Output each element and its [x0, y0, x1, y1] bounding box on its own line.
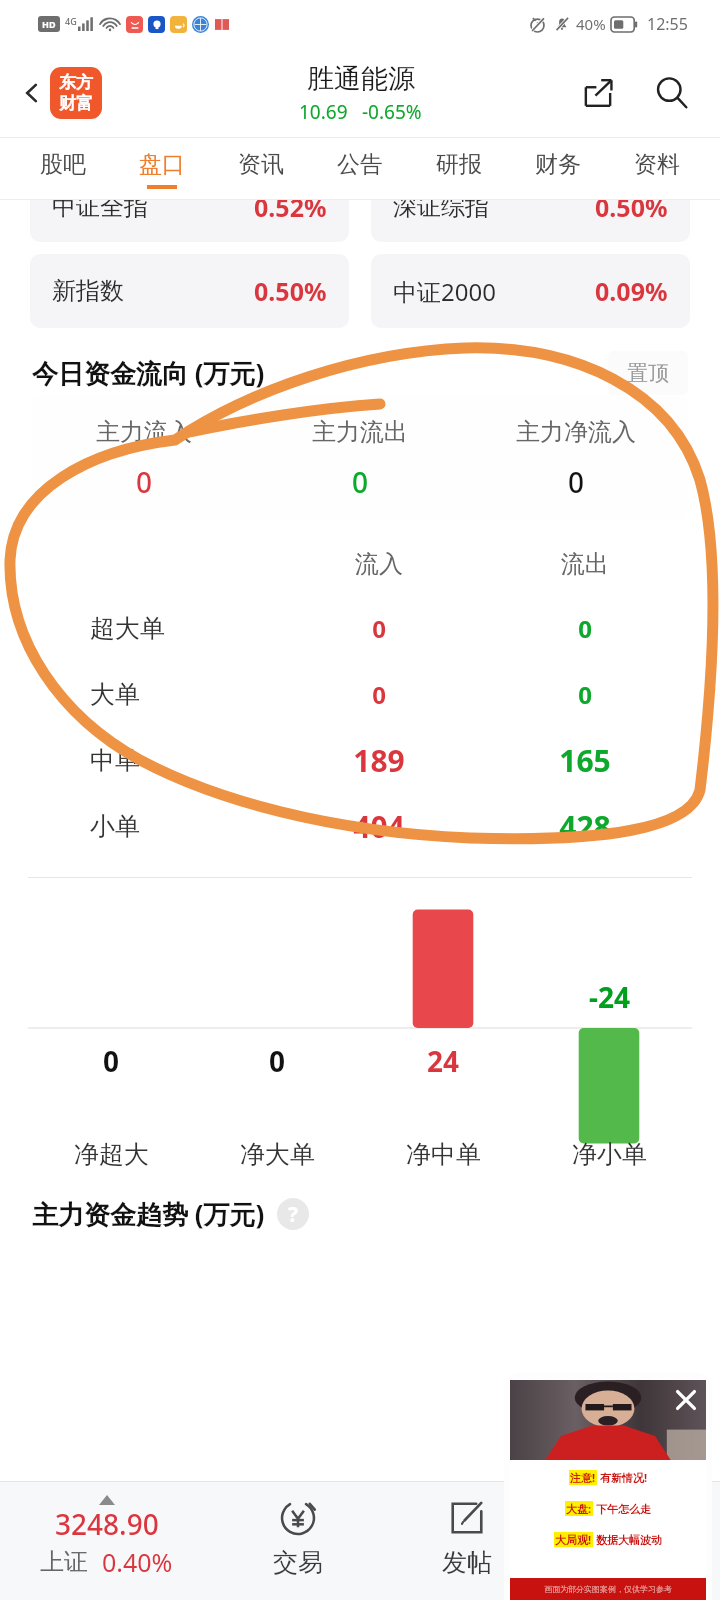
staticText: 数据大幅波动 — [596, 1533, 662, 1547]
button[interactable]: 交易 — [213, 1482, 382, 1600]
staticText: 东方 — [59, 72, 93, 93]
staticText: 股吧 — [40, 150, 86, 179]
staticText: 0.40% — [102, 1545, 173, 1579]
staticText: 流入 — [276, 549, 482, 579]
staticText: 深证综指 — [393, 200, 489, 222]
staticText: 0.52% — [254, 200, 327, 224]
staticText: 净中单 — [406, 1139, 481, 1170]
button[interactable]: 新指数 — [30, 254, 349, 328]
button[interactable]: 研报 — [409, 138, 508, 200]
staticText: 财务 — [535, 150, 581, 179]
button[interactable]: Share — [572, 67, 624, 119]
staticText: 10.69 — [299, 99, 348, 125]
staticText: 165 — [482, 740, 688, 781]
staticText: 0.09% — [595, 274, 668, 308]
staticText: 主力流出 — [312, 417, 408, 447]
button[interactable]: 发帖 — [382, 1482, 551, 1600]
staticText: 上证 — [40, 1547, 88, 1577]
staticText: 资料 — [634, 150, 680, 179]
button[interactable]: 小单 — [32, 793, 688, 859]
staticText: 0 — [482, 678, 688, 711]
staticText: 置顶 — [627, 360, 669, 386]
staticText: 中单 — [90, 745, 140, 776]
staticText: 主力净流入 — [516, 417, 636, 447]
button[interactable]: 财务 — [508, 138, 607, 200]
staticText: 资讯 — [238, 150, 284, 179]
staticText: 428 — [482, 806, 688, 847]
staticText: 0 — [568, 463, 585, 501]
staticText: 0 — [136, 463, 153, 501]
staticText: 注意! — [570, 1470, 596, 1485]
button[interactable]: 深证综指 — [371, 200, 690, 242]
button[interactable]: 3248.90 — [0, 1482, 213, 1600]
staticText: 画面为部分实图案例，仅供学习参考 — [544, 1584, 672, 1594]
button[interactable]: 大单 — [32, 661, 688, 727]
staticText: 大局观! — [555, 1532, 592, 1547]
staticText: 12:55 — [647, 13, 688, 35]
staticText: 今日资金流向 (万元) — [32, 355, 265, 391]
button[interactable]: 中单 — [32, 727, 688, 793]
button[interactable]: 公告 — [310, 138, 409, 200]
staticText: 24 — [427, 1042, 460, 1080]
staticText: 40% — [576, 14, 606, 34]
button[interactable]: Help — [277, 1198, 309, 1230]
staticText: 中证2000 — [393, 275, 496, 308]
staticText: 0 — [269, 1042, 286, 1080]
staticText: 0 — [276, 612, 482, 645]
staticText: 交易 — [273, 1547, 323, 1578]
button[interactable]: 超大单 — [32, 595, 688, 661]
staticText: 流出 — [482, 549, 688, 579]
staticText: 中证全指 — [52, 200, 148, 222]
staticText: 0.50% — [254, 274, 327, 308]
staticText: 0 — [103, 1042, 120, 1080]
staticText: 4G — [65, 15, 77, 27]
staticText: 超大单 — [90, 613, 165, 644]
button[interactable]: 资料 — [607, 138, 706, 200]
button[interactable]: 股吧 — [14, 138, 112, 200]
button[interactable]: Close — [504, 1372, 712, 1600]
staticText: 净小单 — [572, 1139, 647, 1170]
button[interactable]: 置顶 — [608, 351, 688, 395]
staticText: ? — [288, 1200, 299, 1229]
button[interactable]: 功能 — [551, 1482, 720, 1600]
staticText: 发帖 — [442, 1547, 492, 1578]
button[interactable]: 中证全指 — [30, 200, 349, 242]
button[interactable]: 中证2000 — [371, 254, 690, 328]
staticText: 0.50% — [595, 200, 668, 224]
staticText: 189 — [276, 740, 482, 781]
staticText: 大单 — [90, 679, 140, 710]
staticText: 小单 — [90, 811, 140, 842]
staticText: 主力资金趋势 (万元) — [32, 1196, 265, 1232]
staticText: 财富 — [59, 93, 93, 114]
staticText: 0 — [352, 463, 369, 501]
staticText: 0 — [276, 678, 482, 711]
button[interactable]: Back — [8, 69, 56, 117]
staticText: -0.65% — [362, 99, 422, 125]
staticText: -24 — [589, 978, 630, 1016]
button[interactable]: Close — [666, 1380, 706, 1420]
staticText: 主力流入 — [96, 417, 192, 447]
staticText: HD — [42, 18, 56, 30]
staticText: 公告 — [337, 150, 383, 179]
staticText: 新指数 — [52, 276, 124, 306]
button[interactable]: Search — [646, 67, 698, 119]
staticText: 有新情况! — [600, 1470, 648, 1485]
button[interactable]: East Money — [50, 67, 102, 119]
staticText: 0 — [482, 612, 688, 645]
staticText: 净超大 — [74, 1139, 149, 1170]
staticText: 3248.90 — [55, 1505, 159, 1543]
staticText: 404 — [276, 806, 482, 847]
staticText: 盘口 — [139, 150, 185, 179]
staticText: 下午怎么走 — [596, 1502, 651, 1516]
staticText: 胜通能源 — [307, 62, 415, 96]
staticText: 净大单 — [240, 1139, 315, 1170]
staticText: 大盘: — [566, 1501, 592, 1516]
button[interactable]: 盘口 — [112, 138, 211, 200]
staticText: 研报 — [436, 150, 482, 179]
button[interactable]: 资讯 — [211, 138, 310, 200]
